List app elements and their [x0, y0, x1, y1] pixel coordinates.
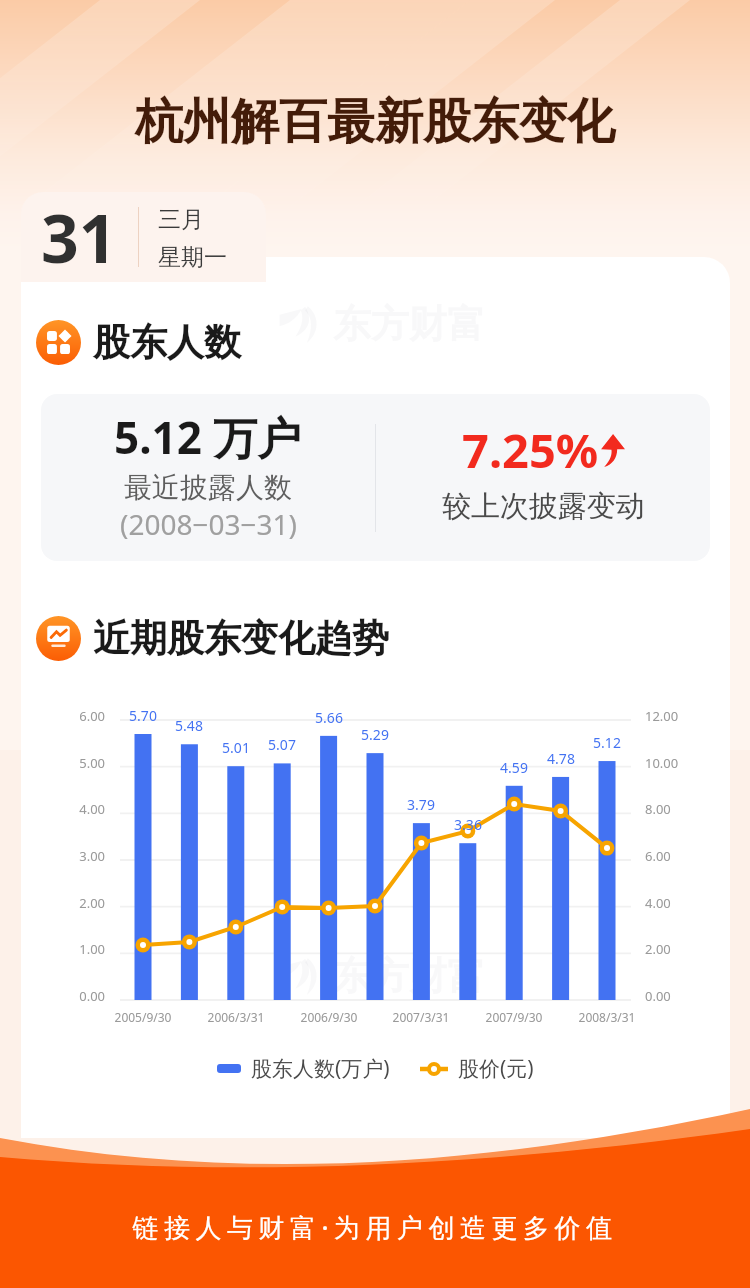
staticText: 31	[41, 192, 117, 282]
staticText: 较上次披露变动	[442, 488, 645, 525]
staticText: 5.29	[335, 725, 415, 744]
staticText: 4.59	[474, 758, 554, 777]
staticText: 2007/9/30	[454, 1009, 574, 1025]
staticText: 0.00	[645, 987, 671, 1005]
staticText: 最近披露人数	[124, 470, 292, 505]
staticText: 3.00	[55, 847, 105, 865]
staticText: 星期一	[158, 243, 227, 272]
staticText: 杭州解百最新股东变化	[0, 92, 750, 152]
staticText: 2006/3/31	[176, 1009, 296, 1025]
staticText: 5.07	[242, 735, 322, 754]
staticText: 3.79	[381, 795, 461, 814]
staticText: 2005/9/30	[83, 1009, 203, 1025]
staticText: 股东人数(万户)	[251, 1054, 390, 1083]
staticText: 5.66	[289, 708, 369, 727]
staticText: 0.00	[55, 987, 105, 1005]
staticText: 东方财富	[333, 952, 485, 1000]
staticText: 5.12	[567, 733, 647, 752]
staticText: 5.70	[103, 706, 183, 725]
staticText: 12.00	[645, 707, 679, 725]
staticText: 2008/3/31	[547, 1009, 667, 1025]
staticText: 2.00	[55, 894, 105, 912]
staticText: 三月	[158, 205, 204, 234]
staticText: 2006/9/30	[269, 1009, 389, 1025]
staticText: 4.00	[55, 800, 105, 818]
staticText: 10.00	[645, 754, 679, 772]
staticText: 4.00	[645, 894, 671, 912]
button[interactable]: 股东人数	[36, 319, 241, 366]
staticText: 股价(元)	[458, 1054, 534, 1083]
staticText: 股东人数	[93, 319, 241, 366]
staticText: 2.00	[645, 940, 671, 958]
staticText: 6.00	[645, 847, 671, 865]
button[interactable]: 31	[21, 192, 266, 282]
staticText: 链接人与财富·为用户创造更多价值	[0, 1209, 750, 1245]
staticText: 5.00	[55, 754, 105, 772]
staticText: 5.48	[149, 716, 229, 735]
staticText: (2008−03−31)	[120, 505, 297, 543]
staticText: 5.12 万户	[114, 407, 302, 467]
staticText: 6.00	[55, 707, 105, 725]
staticText: 东方财富	[333, 300, 485, 348]
staticText: 7.25%	[462, 418, 599, 482]
staticText: 近期股东变化趋势	[93, 615, 389, 662]
button[interactable]: 近期股东变化趋势	[36, 615, 389, 662]
staticText: 2007/3/31	[361, 1009, 481, 1025]
staticText: 1.00	[55, 940, 105, 958]
staticText: 5.01	[196, 738, 276, 757]
staticText: 4.78	[521, 749, 601, 768]
staticText: 8.00	[645, 800, 671, 818]
staticText: 3.36	[428, 815, 508, 834]
